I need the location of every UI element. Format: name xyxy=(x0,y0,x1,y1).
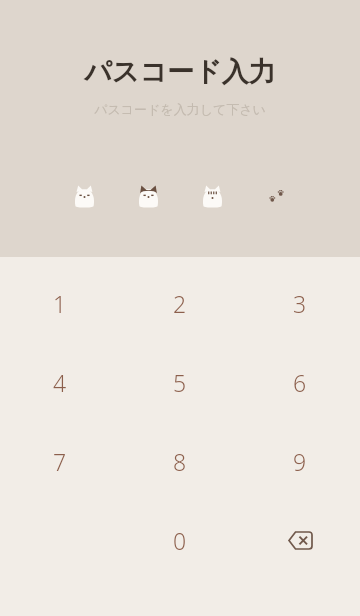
staticText: 2 xyxy=(173,288,187,319)
button[interactable]: 4 xyxy=(0,343,120,422)
button[interactable]: 6 xyxy=(240,343,360,422)
staticText: 7 xyxy=(53,446,67,477)
button[interactable]: Delete xyxy=(240,501,360,580)
staticText: 4 xyxy=(53,367,67,398)
button[interactable]: 9 xyxy=(240,422,360,501)
button[interactable]: 1 xyxy=(0,264,120,343)
button[interactable]: 7 xyxy=(0,422,120,501)
button[interactable]: 2 xyxy=(120,264,240,343)
staticText: 1 xyxy=(53,288,67,319)
staticText: 0 xyxy=(173,525,187,556)
staticText: 3 xyxy=(293,288,307,319)
staticText: 8 xyxy=(173,446,187,477)
button[interactable]: 3 xyxy=(240,264,360,343)
staticText: 5 xyxy=(173,367,187,398)
staticText: 6 xyxy=(293,367,307,398)
staticText: パスコード入力 xyxy=(84,55,276,89)
button[interactable]: 0 xyxy=(120,501,240,580)
staticText: パスコードを入力して下さい xyxy=(94,101,266,117)
button[interactable]: 5 xyxy=(120,343,240,422)
button[interactable]: 8 xyxy=(120,422,240,501)
staticText: 9 xyxy=(293,446,307,477)
